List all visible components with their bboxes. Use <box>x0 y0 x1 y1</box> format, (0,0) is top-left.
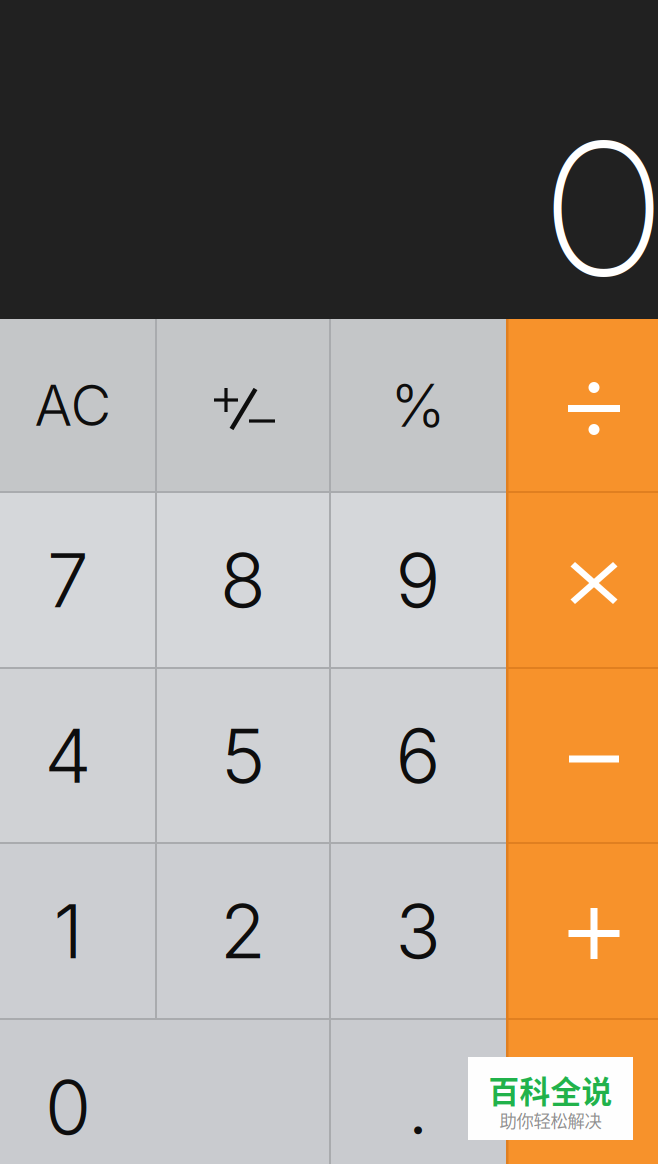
button[interactable]: 7 <box>0 492 156 668</box>
staticText: % <box>390 370 445 441</box>
button[interactable]: Divide <box>506 319 658 492</box>
staticText: 9 <box>395 535 440 625</box>
staticText: 0 <box>548 96 658 322</box>
staticText: 2 <box>220 886 266 976</box>
button[interactable]: 6 <box>330 668 506 843</box>
button[interactable]: . <box>330 1019 506 1164</box>
button[interactable]: 3 <box>330 843 506 1019</box>
staticText: 百科全说 <box>488 1067 612 1112</box>
button[interactable]: 9 <box>330 492 506 668</box>
button[interactable]: 0 <box>0 1019 330 1164</box>
button[interactable]: 5 <box>156 668 330 843</box>
staticText: 8 <box>220 535 266 625</box>
button[interactable]: Equals <box>506 1019 658 1164</box>
staticText: 3 <box>395 886 440 976</box>
staticText: 助你轻松解决 <box>499 1107 601 1132</box>
staticText: 6 <box>395 710 440 801</box>
button[interactable]: Minus <box>506 668 658 843</box>
staticText: 4 <box>44 710 91 801</box>
staticText: 0 <box>45 1062 91 1152</box>
button[interactable]: 8 <box>156 492 330 668</box>
staticText: . <box>407 1062 428 1152</box>
button[interactable]: Toggle sign <box>156 319 330 492</box>
staticText: 1 <box>53 886 82 976</box>
button[interactable]: 2 <box>156 843 330 1019</box>
staticText: AC <box>34 372 111 439</box>
staticText: 5 <box>221 710 265 801</box>
button[interactable]: % <box>330 319 506 492</box>
button[interactable]: Multiply <box>506 492 658 668</box>
staticText: 7 <box>47 535 89 625</box>
button[interactable]: AC <box>0 319 156 492</box>
button[interactable]: 1 <box>0 843 156 1019</box>
button[interactable]: 4 <box>0 668 156 843</box>
button[interactable]: Plus <box>506 843 658 1019</box>
